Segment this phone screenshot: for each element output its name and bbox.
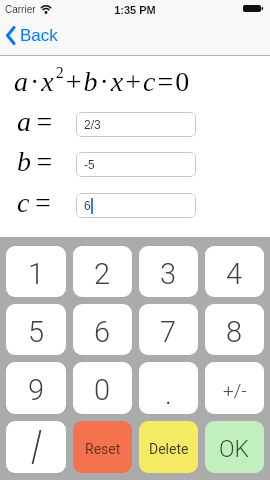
staticText: 7 xyxy=(160,315,177,349)
staticText: 3 xyxy=(160,257,177,291)
button[interactable] xyxy=(6,421,66,473)
button[interactable]: 5 xyxy=(6,304,66,355)
staticText: 0 xyxy=(94,373,111,407)
button[interactable]: 0 xyxy=(73,362,132,414)
button[interactable]: Back xyxy=(5,26,58,45)
button[interactable]: . xyxy=(139,362,198,414)
staticText: 8 xyxy=(226,315,243,349)
staticText: a = xyxy=(17,106,53,137)
button[interactable]: 9 xyxy=(6,362,66,414)
button[interactable]: 6 xyxy=(73,304,132,355)
button[interactable]: -5 xyxy=(76,152,196,177)
staticText: Carrier xyxy=(5,4,36,15)
staticText: Delete xyxy=(149,441,189,457)
staticText: 4 xyxy=(226,257,243,291)
staticText: Back xyxy=(20,26,58,45)
staticText: 6 xyxy=(84,199,91,212)
button[interactable]: 6 xyxy=(76,193,196,218)
staticText: -5 xyxy=(84,158,95,171)
button[interactable]: 1 xyxy=(6,246,66,297)
button[interactable]: OK xyxy=(205,421,264,473)
staticText: 2 xyxy=(94,257,111,291)
staticText: c = xyxy=(17,187,51,218)
staticText: OK xyxy=(219,436,250,463)
button[interactable]: +/- xyxy=(205,362,264,414)
button[interactable]: Delete xyxy=(139,421,198,473)
button[interactable]: 2/3 xyxy=(76,112,196,137)
button[interactable]: Reset xyxy=(73,421,132,473)
staticText: Reset xyxy=(85,441,121,457)
staticText: 1:35 PM xyxy=(0,4,270,16)
button[interactable]: 3 xyxy=(139,246,198,297)
staticText: b = xyxy=(17,146,53,177)
staticText: 9 xyxy=(28,373,45,407)
staticText: a·x2+b·x+c=0 xyxy=(14,64,192,97)
staticText: 6 xyxy=(94,315,111,349)
button[interactable]: 2 xyxy=(73,246,132,297)
staticText: 1 xyxy=(28,257,45,291)
staticText: +/- xyxy=(223,379,247,401)
button[interactable]: 4 xyxy=(205,246,264,297)
button[interactable]: 7 xyxy=(139,304,198,355)
staticText: . xyxy=(165,377,172,411)
button[interactable]: 8 xyxy=(205,304,264,355)
staticText: 2/3 xyxy=(84,118,101,131)
staticText: 5 xyxy=(28,315,45,349)
